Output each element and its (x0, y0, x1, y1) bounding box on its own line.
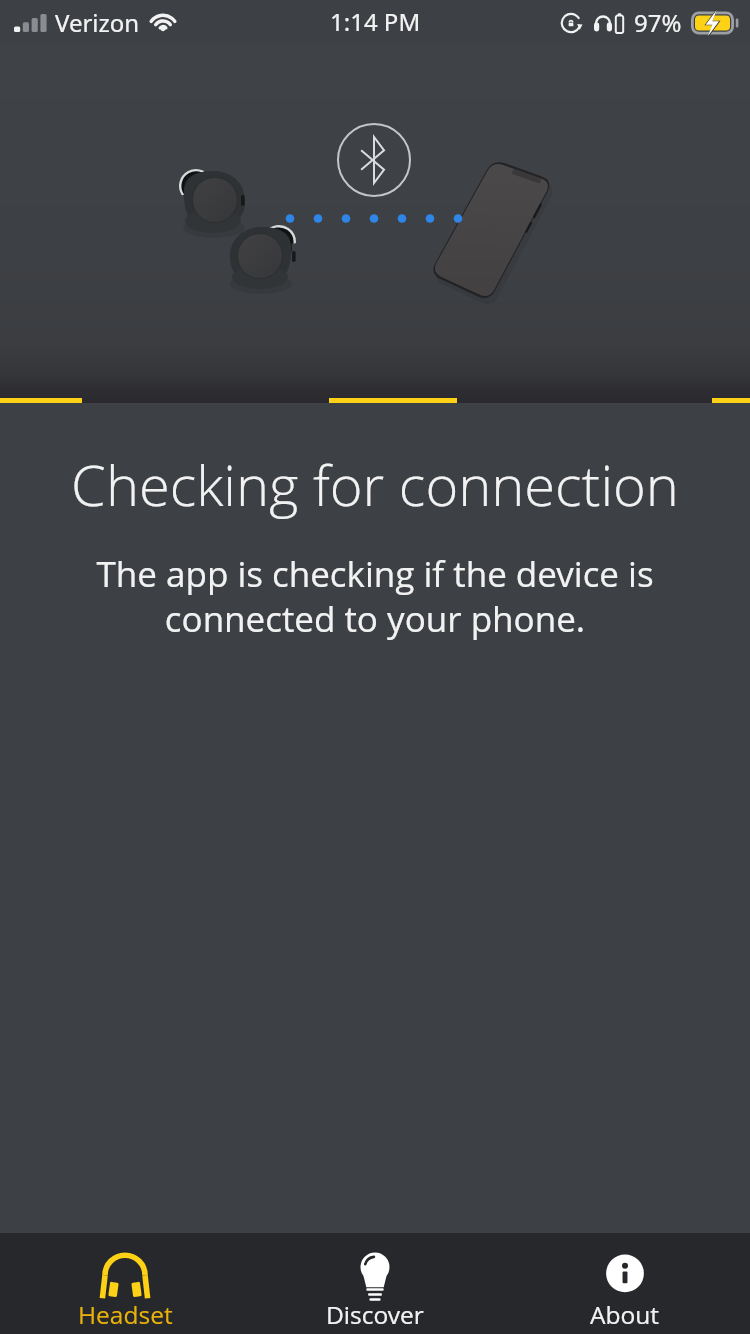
button[interactable]: Headset (0, 1233, 250, 1334)
staticText: 97% (634, 6, 682, 39)
staticText: About (590, 1298, 660, 1331)
staticText: Discover (326, 1298, 424, 1331)
staticText: Checking for connection (0, 446, 750, 522)
staticText: Headset (78, 1298, 173, 1331)
staticText: Verizon (55, 6, 140, 39)
staticText: 1:14 PM (330, 5, 421, 38)
button[interactable]: About (500, 1233, 750, 1334)
button[interactable]: Discover (250, 1233, 500, 1334)
staticText: The app is checking if the device is con… (88, 550, 662, 642)
